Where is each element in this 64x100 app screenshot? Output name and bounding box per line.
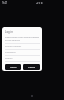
staticText: Cancel [10,66,17,69]
button[interactable]: Region [5,57,40,62]
staticText: Phone number [5,45,22,48]
button[interactable]: Submit [23,64,40,70]
staticText: Log in [5,30,13,34]
staticText: Password [5,51,16,54]
button[interactable]: Password [5,51,40,56]
other: Status icons [36,2,44,4]
staticText: Please enter your account details [5,36,40,39]
staticText: 9:41 [2,1,8,5]
staticText: Region [5,57,13,60]
button[interactable]: Email address [5,39,40,44]
staticText: Submit [28,66,35,69]
button[interactable]: Phone number [5,45,40,50]
button[interactable]: Cancel [5,64,21,70]
staticText: Email address [5,39,21,42]
